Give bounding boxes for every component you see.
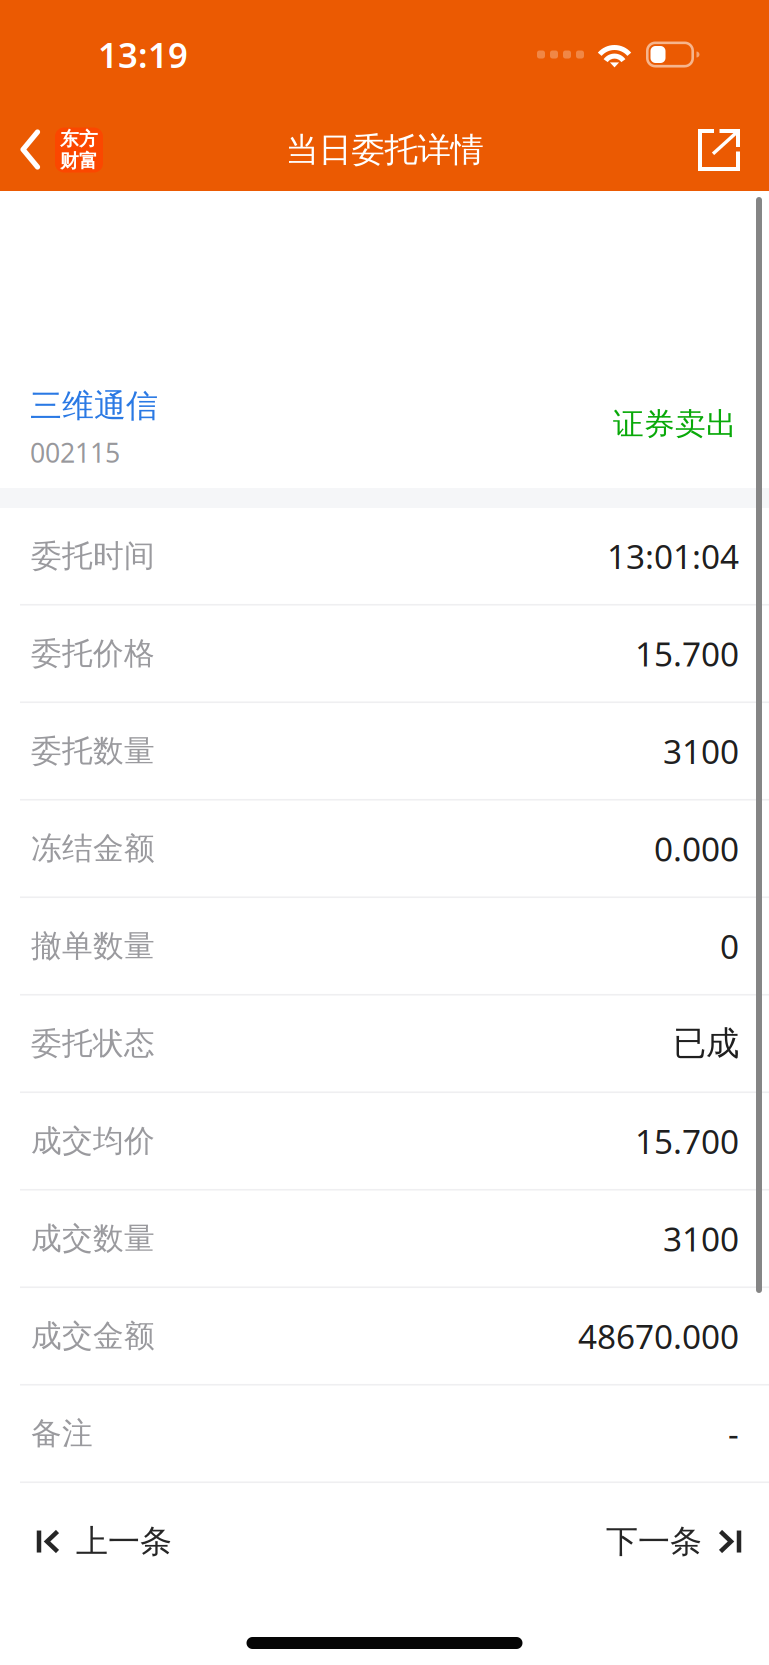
staticText: 15.700 [635,1119,739,1163]
staticText: 委托状态 [31,1025,155,1062]
button[interactable]: 委托状态 [0,995,769,1093]
staticText: 财富 [60,149,98,172]
staticText: 撤单数量 [31,927,155,965]
staticText: 0.000 [654,826,739,871]
staticText: 证券卖出 [613,405,737,443]
button[interactable]: Share [698,109,769,191]
staticText: 3100 [663,1216,739,1261]
staticText: 三维通信 [30,386,158,426]
button[interactable]: 下一条 [606,1500,769,1579]
staticText: 13:01:04 [607,534,739,578]
button[interactable]: 委托价格 [0,605,769,703]
staticText: 备注 [31,1415,93,1452]
staticText: 当日委托详情 [285,129,483,170]
staticText: 委托时间 [31,537,155,575]
staticText: 成交数量 [31,1220,155,1257]
staticText: 下一条 [606,1522,702,1561]
staticText: 48670.000 [578,1314,739,1358]
button[interactable]: 撤单数量 [0,898,769,995]
button[interactable]: 成交金额 [0,1288,769,1385]
staticText: 上一条 [76,1522,172,1561]
button[interactable]: 成交数量 [0,1190,769,1288]
staticText: 002115 [30,435,120,470]
staticText: 委托数量 [31,732,155,770]
button[interactable]: 委托时间 [0,508,769,605]
button[interactable]: 成交均价 [0,1093,769,1190]
staticText: 成交金额 [31,1317,155,1355]
staticText: 15.700 [635,631,739,676]
staticText: 3100 [663,729,739,773]
button[interactable]: Back [0,109,115,191]
button[interactable]: 冻结金额 [0,800,769,898]
button[interactable]: 委托数量 [0,703,769,800]
staticText: 已成 [673,1023,739,1064]
staticText: 0 [720,924,739,968]
staticText: - [728,1411,739,1456]
staticText: 冻结金额 [31,830,155,867]
staticText: 13:19 [98,31,188,77]
staticText: 委托价格 [31,635,155,672]
staticText: 东方 [60,128,98,150]
button[interactable]: 上一条 [0,1500,172,1579]
button[interactable]: 备注 [0,1385,769,1483]
staticText: 成交均价 [31,1122,155,1160]
